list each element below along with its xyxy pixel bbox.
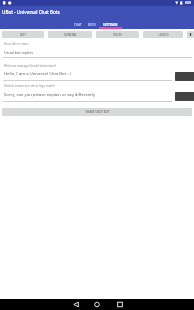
staticText: BOTS	[88, 23, 96, 27]
button[interactable]: BOT	[2, 31, 44, 38]
button[interactable]: Edit default answer	[175, 92, 194, 101]
staticText: Default answer (no rule or logic match)	[4, 84, 56, 88]
staticText: RULES	[113, 33, 122, 37]
staticText: GENERAL	[64, 33, 77, 37]
staticText: 8:09	[185, 1, 191, 5]
button[interactable]: Back	[65, 299, 86, 310]
staticText: LOGICS	[158, 33, 169, 37]
button[interactable]: CHAT	[72, 17, 84, 29]
staticText: SHARE UBOT BOT	[85, 110, 110, 114]
staticText: SETTINGS	[103, 23, 118, 27]
staticText: BOT	[20, 33, 26, 37]
staticText: CHAT	[74, 23, 82, 27]
button[interactable]: RULES	[96, 31, 139, 38]
button[interactable]: Recent apps	[109, 299, 130, 310]
button[interactable]: SETTINGS	[99, 17, 122, 29]
staticText: Welcome message (should show intent)	[4, 64, 57, 68]
button[interactable]: Home	[86, 299, 109, 310]
staticText: Sorry, can you please explain or say dif…	[4, 92, 96, 98]
staticText: UBot - Universal Chat Bots	[2, 9, 60, 15]
button[interactable]: BOTS	[84, 17, 99, 29]
staticText: Usual bot replies	[4, 50, 34, 55]
button[interactable]: Edit welcome message	[175, 72, 194, 81]
staticText: Short title or name	[4, 42, 29, 46]
staticText: Hello, I am a Universal Chat Bot :-)	[4, 71, 71, 77]
button[interactable]: More options	[187, 31, 194, 38]
button[interactable]: SHARE UBOT BOT	[2, 108, 192, 116]
button[interactable]: LOGICS	[143, 31, 183, 38]
button[interactable]: GENERAL	[48, 31, 92, 38]
